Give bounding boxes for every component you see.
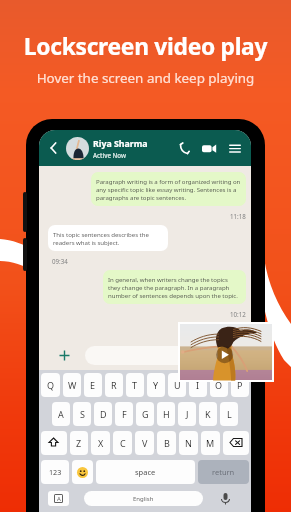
staticText: M <box>206 437 215 449</box>
staticText: English <box>133 495 154 503</box>
staticText: Hover the screen and keep playing <box>0 69 291 87</box>
staticText: L <box>227 408 232 420</box>
button[interactable]: Y <box>147 373 165 397</box>
button[interactable]: L <box>220 402 238 426</box>
button[interactable] <box>85 346 243 365</box>
staticText: V <box>142 437 148 449</box>
staticText: This topic sentences describes the reade… <box>53 230 163 246</box>
staticText: 123 <box>49 467 62 477</box>
button[interactable]: A <box>52 402 70 426</box>
button[interactable]: X <box>91 431 110 455</box>
button[interactable]: Video call <box>202 140 217 156</box>
button[interactable]: English <box>84 491 203 506</box>
button[interactable]: U <box>168 373 186 397</box>
button[interactable]: W <box>63 373 81 397</box>
button[interactable]: Call <box>176 140 192 156</box>
button[interactable]: D <box>94 402 112 426</box>
button[interactable]: Z <box>70 431 88 455</box>
staticText: C <box>120 437 126 449</box>
button[interactable]: space <box>96 460 195 484</box>
button[interactable]: return <box>198 460 249 484</box>
button[interactable]: 123 <box>41 460 69 484</box>
staticText: Y <box>153 379 159 391</box>
button[interactable]: V <box>135 431 154 455</box>
staticText: E <box>90 379 96 391</box>
staticText: return <box>212 467 235 477</box>
button[interactable]: Paragraph writing is a form of organized… <box>91 172 246 206</box>
button[interactable]: Backspace <box>223 431 249 455</box>
staticText: I <box>196 379 200 391</box>
staticText: 09:34 <box>52 257 68 265</box>
staticText: S <box>80 408 85 420</box>
button[interactable]: Floating video <box>180 324 272 380</box>
staticText: T <box>132 379 138 391</box>
staticText: Lockscreen video play <box>0 31 291 62</box>
staticText: O <box>215 379 223 391</box>
staticText: Active Now <box>93 151 127 159</box>
staticText: A <box>57 495 61 502</box>
staticText: Z <box>76 437 82 449</box>
button[interactable]: E <box>84 373 102 397</box>
staticText: 10:12 <box>230 310 246 318</box>
staticText: N <box>185 437 192 449</box>
button[interactable]: Attach <box>54 345 74 365</box>
staticText: In general, when writers change the topi… <box>108 275 241 299</box>
staticText: P <box>237 379 243 391</box>
staticText: H <box>163 408 170 420</box>
staticText: K <box>205 408 211 420</box>
staticText: B <box>164 437 170 449</box>
button[interactable]: K <box>199 402 217 426</box>
staticText: U <box>174 379 181 391</box>
button[interactable]: P <box>231 373 249 397</box>
button[interactable]: Back <box>45 139 63 157</box>
staticText: Q <box>47 379 55 391</box>
button[interactable]: In general, when writers change the topi… <box>103 270 246 304</box>
staticText: G <box>142 408 149 420</box>
button[interactable]: G <box>136 402 154 426</box>
button[interactable]: M <box>201 431 220 455</box>
button[interactable]: H <box>157 402 175 426</box>
button[interactable]: B <box>157 431 176 455</box>
button[interactable]: T <box>126 373 144 397</box>
button[interactable]: O <box>210 373 228 397</box>
staticText: Riya Sharma <box>93 138 148 150</box>
button[interactable]: R <box>105 373 123 397</box>
staticText: X <box>98 437 104 449</box>
button[interactable]: This topic sentences describes the reade… <box>48 225 168 251</box>
staticText: W <box>68 379 77 391</box>
button[interactable]: S <box>73 402 91 426</box>
button[interactable]: Shift <box>41 431 67 455</box>
button[interactable]: Q <box>41 373 60 397</box>
staticText: 11:18 <box>230 212 246 220</box>
button[interactable]: Menu <box>227 140 243 156</box>
button[interactable]: Emoji <box>72 460 93 484</box>
staticText: space <box>135 467 156 477</box>
staticText: A <box>58 408 64 420</box>
staticText: Paragraph writing is a form of organized… <box>96 177 241 201</box>
button[interactable]: Voice input <box>217 490 233 506</box>
staticText: J <box>186 408 189 420</box>
button[interactable]: C <box>113 431 132 455</box>
button[interactable]: J <box>178 402 196 426</box>
staticText: F <box>122 408 127 420</box>
button[interactable]: Keyboard layout <box>48 491 69 506</box>
staticText: R <box>111 379 117 391</box>
button[interactable]: N <box>179 431 198 455</box>
button[interactable]: F <box>115 402 133 426</box>
staticText: D <box>100 408 107 420</box>
button[interactable]: I <box>189 373 207 397</box>
